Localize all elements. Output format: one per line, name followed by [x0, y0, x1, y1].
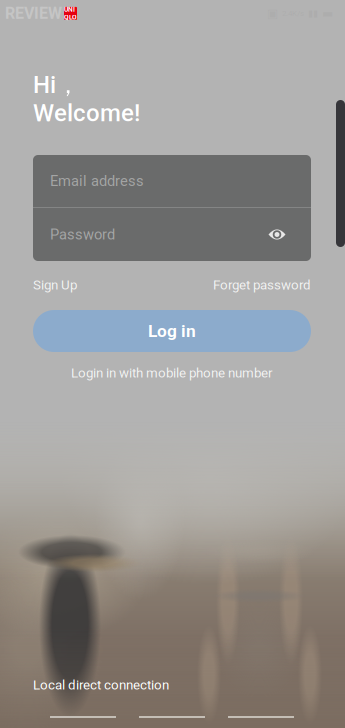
staticText: Local direct connection — [33, 677, 169, 693]
staticText: Log in — [148, 321, 196, 341]
button[interactable]: Login in with mobile phone number — [71, 364, 273, 382]
staticText: Hi， — [33, 70, 80, 100]
button[interactable]: Show password — [263, 220, 291, 248]
button[interactable]: Email address — [33, 155, 311, 207]
staticText: Sign Up — [33, 277, 77, 293]
staticText: Password — [50, 226, 115, 243]
button[interactable]: Log in — [33, 310, 311, 352]
button[interactable]: Forget password — [213, 275, 311, 295]
button[interactable]: Sign Up — [33, 275, 77, 295]
staticText: Welcome! — [33, 99, 140, 127]
staticText: Email address — [50, 172, 144, 190]
staticText: UNI QLO — [64, 6, 77, 21]
staticText: Login in with mobile phone number — [71, 365, 273, 381]
staticText: REVIEW — [5, 4, 62, 23]
staticText: Forget password — [213, 277, 311, 293]
